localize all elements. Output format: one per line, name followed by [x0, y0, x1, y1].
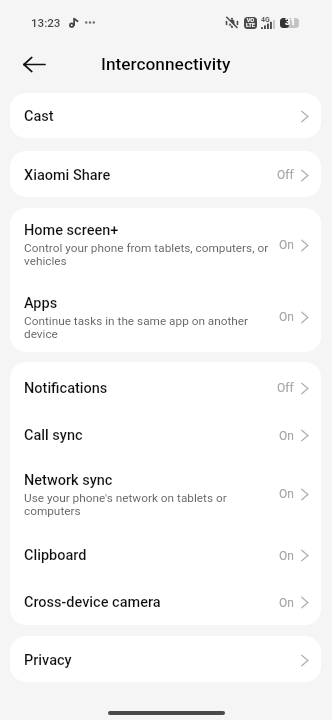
- staticText: 13:23: [31, 16, 61, 30]
- button[interactable]: Notifications: [10, 362, 321, 412]
- staticText: Privacy: [24, 652, 72, 669]
- button[interactable]: Apps: [10, 281, 321, 352]
- staticText: Cast: [24, 108, 54, 125]
- staticText: On: [279, 487, 294, 501]
- button[interactable]: Back: [17, 47, 51, 81]
- staticText: On: [279, 238, 294, 252]
- button[interactable]: Home screen+: [10, 208, 321, 281]
- staticText: VO LTE: [246, 17, 255, 29]
- staticText: Cross-device camera: [24, 594, 161, 611]
- button[interactable]: Cross-device camera: [10, 578, 321, 625]
- button[interactable]: Xiaomi Share: [10, 151, 321, 197]
- button[interactable]: Network sync: [10, 457, 321, 531]
- button[interactable]: Call sync: [10, 412, 321, 457]
- button[interactable]: Clipboard: [10, 531, 321, 578]
- button[interactable]: Cast: [10, 93, 321, 138]
- staticText: Off: [277, 381, 294, 395]
- staticText: Network sync: [24, 472, 113, 489]
- staticText: Off: [277, 168, 294, 182]
- staticText: Use your phone's network on tablets or c…: [24, 491, 240, 518]
- button[interactable]: Privacy: [10, 636, 321, 682]
- staticText: Clipboard: [24, 547, 87, 564]
- staticText: On: [279, 596, 294, 610]
- staticText: 31: [285, 17, 296, 28]
- staticText: On: [279, 549, 294, 563]
- staticText: Call sync: [24, 427, 83, 444]
- staticText: Interconnectivity: [101, 54, 231, 74]
- staticText: Home screen+: [24, 222, 119, 239]
- staticText: Continue tasks in the same app on anothe…: [24, 314, 270, 341]
- staticText: On: [279, 310, 294, 324]
- staticText: Notifications: [24, 380, 108, 397]
- staticText: Apps: [24, 295, 58, 312]
- staticText: Control your phone from tablets, compute…: [24, 241, 270, 268]
- staticText: Xiaomi Share: [24, 167, 111, 184]
- staticText: On: [279, 429, 294, 443]
- staticText: 4G: [261, 16, 270, 24]
